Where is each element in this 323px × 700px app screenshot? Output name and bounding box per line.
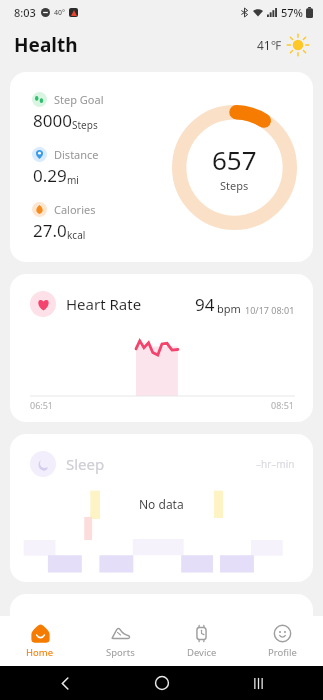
button[interactable]: 41℉: [253, 31, 313, 59]
staticText: Distance: [54, 147, 99, 162]
button[interactable]: Heart Rate: [10, 274, 313, 422]
staticText: 10/17 08:01: [245, 304, 295, 316]
button[interactable]: Step Goal: [10, 72, 313, 262]
staticText: 8:03: [14, 5, 36, 20]
staticText: 27.0: [33, 219, 67, 242]
staticText: Profile: [268, 646, 297, 659]
staticText: 40°: [54, 8, 65, 18]
staticText: No data: [139, 496, 184, 512]
staticText: 08:51: [271, 399, 295, 411]
other: Weather: [287, 34, 309, 56]
staticText: Heart Rate: [66, 294, 142, 314]
staticText: 06:51: [30, 399, 54, 411]
button[interactable]: Back: [52, 670, 78, 696]
staticText: Sleep: [66, 454, 105, 474]
staticText: 8000: [33, 109, 72, 132]
staticText: Calories: [54, 202, 96, 217]
button[interactable]: Profile: [242, 616, 323, 666]
button[interactable]: Recent apps: [245, 670, 271, 696]
staticText: bpm: [217, 301, 241, 316]
staticText: 41℉: [257, 37, 282, 53]
staticText: Sports: [106, 646, 135, 659]
button[interactable]: Home: [0, 616, 80, 666]
staticText: Step Goal: [54, 92, 104, 107]
staticText: Steps: [72, 118, 98, 132]
staticText: 57%: [281, 5, 303, 20]
staticText: Home: [26, 646, 54, 659]
button[interactable]: Sleep: [10, 434, 313, 582]
staticText: 0.29: [33, 164, 67, 187]
button[interactable]: Device: [161, 616, 242, 666]
button[interactable]: Sports: [80, 616, 161, 666]
staticText: Device: [187, 646, 217, 659]
staticText: Steps: [220, 178, 249, 193]
staticText: –hr–min: [256, 457, 295, 471]
staticText: Health: [14, 32, 78, 58]
button[interactable]: Home: [149, 670, 175, 696]
staticText: mi: [67, 173, 79, 187]
staticText: kcal: [67, 228, 86, 242]
staticText: 94: [195, 293, 215, 316]
staticText: 657: [212, 142, 257, 177]
